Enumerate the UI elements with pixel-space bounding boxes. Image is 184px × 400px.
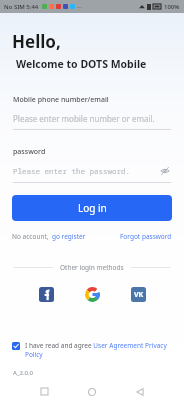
staticText: No SIM 5:44 — [4, 3, 39, 11]
staticText: Log in — [78, 201, 107, 215]
staticText: Other login methods — [60, 263, 124, 272]
staticText: No account, — [12, 232, 49, 241]
staticText: ··· — [77, 3, 82, 11]
staticText: Hello, — [12, 30, 61, 53]
button[interactable]: Sign in with Facebook — [37, 285, 55, 303]
staticText: Please enter the password. — [13, 166, 159, 176]
button[interactable]: Forgot password — [120, 232, 172, 241]
staticText: I have read and agree User Agreement Pri… — [25, 341, 168, 359]
button[interactable]: Recents — [35, 383, 53, 400]
staticText: Mobile phone number/email — [13, 95, 109, 105]
staticText: A_2.0.0 — [13, 369, 34, 377]
button[interactable]: No account, — [12, 232, 86, 241]
button[interactable]: Back — [131, 383, 149, 400]
button[interactable]: Log in — [12, 195, 172, 221]
staticText: Forgot password — [120, 232, 172, 241]
staticText: Welcome to DOTS Mobile — [16, 57, 147, 71]
staticText: 100% — [164, 3, 180, 11]
button[interactable]: I have read and agree User Agreement Pri… — [12, 341, 168, 359]
button[interactable]: Sign in with Google — [83, 285, 101, 303]
button[interactable]: Show password — [159, 165, 171, 177]
button[interactable]: Home — [83, 383, 101, 400]
button[interactable]: Please enter mobile number or email. — [13, 113, 171, 130]
staticText: password — [13, 147, 46, 157]
button[interactable]: Please enter the password. — [13, 165, 171, 183]
button[interactable]: Sign in with VK — [129, 285, 147, 303]
staticText: Please enter mobile number or email. — [13, 113, 171, 124]
staticText: VK — [134, 290, 144, 300]
staticText: go register — [52, 232, 86, 241]
